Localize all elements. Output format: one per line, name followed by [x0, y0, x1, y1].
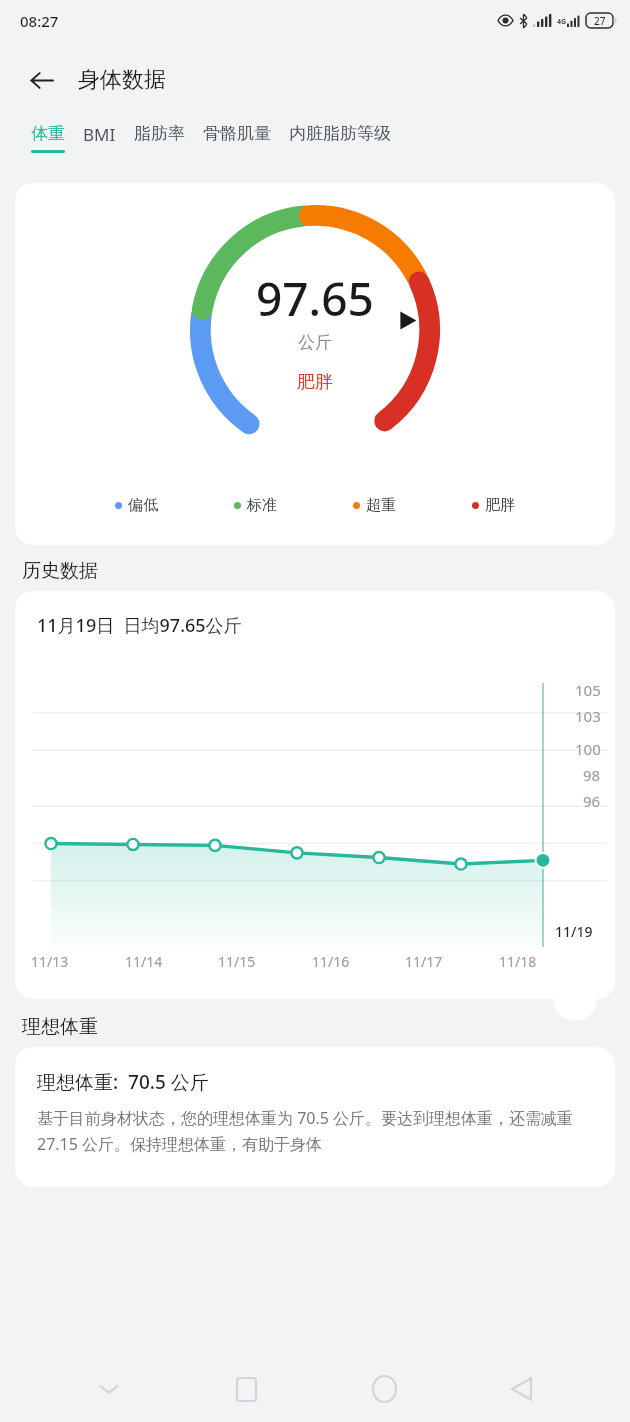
staticText: 27: [594, 14, 606, 28]
staticText: 基于目前身材状态，您的理想体重为 70.5 公斤。要达到理想体重，还需减重 27…: [37, 1107, 597, 1154]
button[interactable]: 脂肪率: [125, 119, 194, 154]
button[interactable]: 偏低: [115, 496, 158, 515]
button[interactable]: BMI: [74, 119, 125, 156]
button[interactable]: Hide keyboard: [80, 1360, 138, 1418]
staticText: 100: [575, 739, 601, 759]
button[interactable]: 理想体重: 70.5 公斤: [15, 1047, 615, 1187]
staticText: 历史数据: [22, 559, 98, 583]
button[interactable]: 内脏脂肪等级: [280, 119, 400, 154]
staticText: 96: [583, 791, 601, 811]
staticText: BMI: [83, 123, 116, 146]
staticText: 肥胖: [485, 496, 515, 515]
button[interactable]: Scroll handle: [553, 977, 597, 1021]
staticText: 4G: [557, 17, 567, 27]
button[interactable]: Home: [355, 1360, 413, 1418]
button[interactable]: 标准: [234, 496, 277, 515]
staticText: 脂肪率: [134, 123, 185, 144]
staticText: 11/19: [555, 922, 593, 941]
staticText: 理想体重: [22, 1015, 98, 1039]
staticText: 11/15: [218, 952, 256, 971]
button[interactable]: Back: [18, 57, 64, 103]
staticText: 98: [583, 765, 601, 785]
staticText: 身体数据: [78, 66, 166, 94]
button[interactable]: 肥胖: [472, 496, 515, 515]
button[interactable]: 体重: [22, 119, 74, 157]
button[interactable]: Recents: [217, 1360, 275, 1418]
staticText: 97.65: [256, 267, 374, 330]
staticText: 11/16: [312, 952, 350, 971]
staticText: 骨骼肌量: [203, 123, 271, 144]
staticText: 偏低: [128, 496, 158, 515]
button[interactable]: 超重: [353, 496, 396, 515]
staticText: 11/13: [31, 952, 69, 971]
staticText: 105: [575, 680, 601, 700]
button[interactable]: 97.65: [15, 183, 615, 545]
staticText: 肥胖: [297, 371, 333, 394]
staticText: 理想体重: 70.5 公斤: [37, 1069, 209, 1095]
button[interactable]: 骨骼肌量: [194, 119, 280, 154]
staticText: 11/17: [405, 952, 443, 971]
staticText: 标准: [247, 496, 277, 515]
staticText: 11/14: [125, 952, 163, 971]
staticText: 内脏脂肪等级: [289, 123, 391, 144]
staticText: 08:27: [20, 11, 59, 31]
staticText: 11/18: [499, 952, 537, 971]
staticText: 体重: [31, 123, 65, 144]
staticText: 超重: [366, 496, 396, 515]
button[interactable]: 11月19日 日均97.65公斤: [15, 591, 615, 999]
button[interactable]: Back: [492, 1360, 550, 1418]
staticText: 公斤: [298, 332, 332, 353]
staticText: 11月19日 日均97.65公斤: [37, 613, 242, 638]
staticText: 103: [575, 706, 601, 726]
